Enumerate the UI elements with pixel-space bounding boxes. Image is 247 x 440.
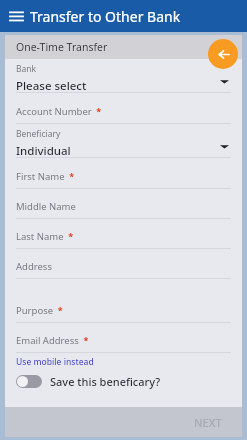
button[interactable]: Middle Name [5, 189, 242, 219]
button[interactable]: Bank [5, 59, 242, 93]
button[interactable]: First Name * [5, 158, 242, 189]
button[interactable]: Last Name * [5, 219, 242, 249]
staticText: Bank [16, 63, 37, 75]
staticText: Save this beneficary? [50, 374, 161, 389]
button[interactable]: NEXT [180, 409, 236, 436]
button[interactable]: Open navigation menu [5, 5, 27, 27]
staticText: Purpose * [16, 304, 63, 317]
button[interactable]: Purpose * [5, 295, 242, 323]
button[interactable]: Beneficiary [5, 124, 242, 158]
staticText: Address [16, 260, 52, 273]
staticText: NEXT [194, 415, 222, 430]
staticText: First Name * [16, 170, 75, 183]
button[interactable]: Account Number * [5, 93, 242, 124]
staticText: Account Number * [16, 105, 102, 118]
button[interactable]: Back [208, 39, 238, 69]
staticText: Email Address * [16, 334, 89, 347]
staticText: Beneficiary [16, 128, 61, 140]
staticText: Last Name * [16, 230, 74, 243]
staticText: Please select [16, 78, 87, 93]
button[interactable]: Save this beneficary? [5, 368, 242, 394]
button[interactable]: Email Address * [5, 323, 242, 353]
button[interactable]: Address [5, 249, 242, 279]
staticText: Transfer to Other Bank [30, 7, 181, 26]
staticText: One-Time Transfer [16, 40, 108, 54]
staticText: Individual [16, 143, 71, 158]
staticText: Middle Name [16, 200, 76, 213]
button[interactable]: Use mobile instead [16, 356, 94, 368]
